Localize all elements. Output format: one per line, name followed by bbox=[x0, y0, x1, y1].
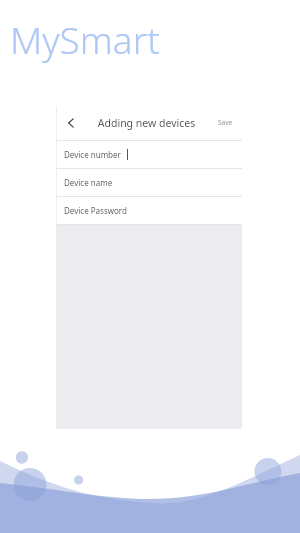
button[interactable]: Save bbox=[208, 105, 242, 140]
button[interactable]: Device name bbox=[57, 169, 242, 196]
button[interactable]: Device number bbox=[57, 141, 242, 168]
button[interactable]: Device Password bbox=[57, 197, 242, 224]
staticText: Device number bbox=[64, 149, 121, 160]
staticText: Save bbox=[218, 118, 233, 127]
button[interactable]: Back bbox=[57, 105, 85, 140]
staticText: Device Password bbox=[64, 205, 127, 216]
staticText: MySmart bbox=[10, 14, 160, 64]
staticText: Device name bbox=[64, 177, 113, 188]
staticText: Adding new devices bbox=[85, 116, 208, 130]
